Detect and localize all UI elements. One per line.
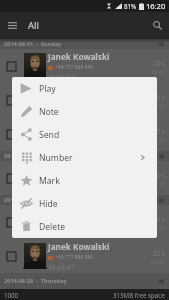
staticText: 260 kB <box>149 225 165 232</box>
staticText: 16:20 <box>146 1 166 11</box>
staticText: 81% <box>124 2 137 10</box>
staticText: 16:20:04 <box>48 73 75 82</box>
staticText: Janek Kowalski <box>48 241 110 252</box>
button[interactable]: Janek Kowalski <box>0 83 169 117</box>
button[interactable]: Janek Kowalski <box>0 161 169 195</box>
staticText: 45 s <box>153 127 165 135</box>
button[interactable]: Janek Kowalski <box>0 239 169 273</box>
staticText: 140 kB <box>149 69 165 76</box>
button[interactable]: Mark <box>12 169 157 192</box>
staticText: Janek Kowalski <box>48 85 110 96</box>
button[interactable]: Open navigation drawer <box>0 12 24 39</box>
button[interactable]: Janek Kowalski <box>0 205 169 239</box>
staticText: +48 777 888 999 <box>55 132 94 139</box>
staticText: 16:43:47 <box>48 263 75 272</box>
button[interactable]: Note <box>12 100 157 123</box>
staticText: 313MB free space <box>113 291 165 299</box>
staticText: Delete <box>39 221 66 233</box>
button[interactable]: Search <box>145 12 169 39</box>
staticText: Play <box>39 83 56 95</box>
staticText: 12 s <box>153 171 165 179</box>
button[interactable]: Play <box>12 77 157 100</box>
staticText: 33 s <box>153 215 165 223</box>
staticText: Mark <box>39 175 60 187</box>
staticText: 17:02:31 <box>48 229 75 238</box>
button[interactable]: Janek Kowalski <box>0 49 169 83</box>
staticText: +48 777 888 999 <box>55 254 94 261</box>
button[interactable]: Janek Kowalski <box>0 117 169 151</box>
staticText: 1000 <box>4 291 19 299</box>
staticText: 220 kB <box>149 137 165 144</box>
staticText: Number <box>39 152 73 164</box>
button[interactable]: Send <box>12 123 157 146</box>
staticText: 20 s <box>153 59 165 67</box>
staticText: Send <box>39 129 60 141</box>
staticText: +48 777 888 999 <box>55 64 94 71</box>
staticText: 2014-08-29 - Friday <box>4 196 59 204</box>
staticText: 2014-08-30 - Saturday <box>4 152 66 160</box>
staticText: All <box>28 19 39 32</box>
staticText: +48 777 888 999 <box>55 176 94 183</box>
button[interactable]: Hide <box>12 192 157 215</box>
staticText: 98 kB <box>152 181 165 188</box>
staticText: Hide <box>39 198 58 210</box>
staticText: 2014-08-28 - Thursday <box>4 277 67 285</box>
staticText: 52 s <box>153 249 165 257</box>
staticText: Janek Kowalski <box>48 51 110 62</box>
staticText: 1 m 2 s <box>144 93 165 101</box>
staticText: 2014-08-31 - Sunday <box>4 40 62 48</box>
staticText: Note <box>39 106 59 118</box>
staticText: 330 kB <box>149 103 165 110</box>
button[interactable]: Number <box>12 146 157 169</box>
staticText: +48 777 888 999 <box>55 220 94 227</box>
staticText: 16:15:31 <box>48 107 75 116</box>
staticText: 408 kB <box>149 259 165 266</box>
button[interactable]: Delete <box>12 215 157 238</box>
